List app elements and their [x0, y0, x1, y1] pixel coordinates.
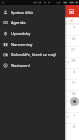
staticText: 4 — [73, 69, 76, 74]
staticText: Správa účtů — [11, 10, 34, 15]
button[interactable]: Narozeniny — [0, 39, 65, 50]
staticText: 11 — [71, 80, 76, 85]
staticText: 21 — [71, 47, 76, 52]
staticText: Narozeniny — [11, 42, 33, 47]
staticText: Kalendáře, které se mají zobrazit — [11, 52, 65, 57]
staticText: 1 — [73, 113, 76, 118]
button[interactable]: Správa účtů — [0, 7, 65, 18]
staticText: 7 — [73, 25, 76, 30]
button[interactable]: Upomínky — [0, 28, 65, 39]
staticText: 28 — [71, 58, 76, 63]
button[interactable]: Agenda — [0, 17, 65, 28]
staticText: Agenda — [11, 20, 26, 25]
button[interactable]: Today — [68, 8, 75, 15]
staticText: 18 — [71, 91, 76, 96]
staticText: N — [70, 18, 73, 23]
button[interactable]: Nastavení — [0, 60, 65, 71]
staticText: Ú — [15, 18, 18, 23]
button[interactable]: Add event — [70, 97, 79, 106]
staticText: Nastavení — [11, 63, 30, 68]
staticText: 25 — [71, 102, 76, 107]
staticText: 14 — [71, 36, 76, 41]
staticText: Upomínky — [11, 31, 31, 36]
staticText: 8 — [73, 124, 76, 129]
button[interactable]: Kalendáře, které se mají zobrazit — [0, 49, 65, 60]
staticText: P — [4, 18, 7, 23]
